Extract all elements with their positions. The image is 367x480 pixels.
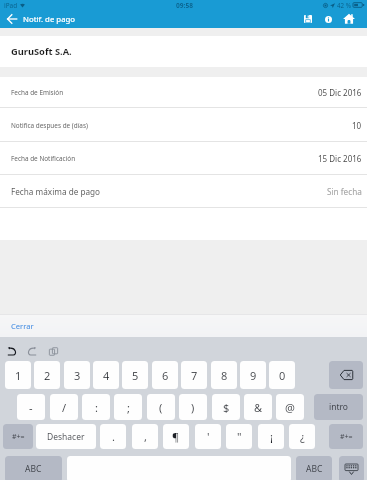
staticText: 3 xyxy=(74,368,81,383)
staticText: 5 xyxy=(132,368,139,383)
button[interactable]: ¿ xyxy=(289,424,315,449)
staticText: 7 xyxy=(191,368,198,383)
button[interactable]: ¡ xyxy=(258,424,284,449)
staticText: GuruSoft S.A. xyxy=(11,45,72,58)
staticText: ¶ xyxy=(172,429,180,444)
staticText: ( xyxy=(159,400,163,415)
button[interactable]: 7 xyxy=(181,361,207,389)
button[interactable]: : xyxy=(82,394,110,420)
staticText: 42 % xyxy=(337,1,351,9)
button[interactable]: & xyxy=(244,394,272,420)
button[interactable]: Back xyxy=(0,10,23,28)
button[interactable]: 0 xyxy=(269,361,295,389)
button[interactable]: Home xyxy=(338,10,359,28)
button[interactable]: Save xyxy=(298,10,318,28)
staticText: iPad xyxy=(4,1,18,10)
button[interactable]: , xyxy=(132,424,158,449)
staticText: 05 Dic 2016 xyxy=(318,87,362,98)
button[interactable]: Cerrar xyxy=(0,314,367,337)
staticText: ¡ xyxy=(270,429,273,444)
button[interactable]: 8 xyxy=(211,361,237,389)
staticText: ) xyxy=(191,400,195,415)
staticText: 4 xyxy=(103,368,110,383)
staticText: : xyxy=(95,400,98,415)
staticText: $ xyxy=(223,400,230,415)
button[interactable]: / xyxy=(50,394,78,420)
staticText: Deshacer xyxy=(47,431,85,443)
staticText: Sin fecha xyxy=(327,186,362,197)
button[interactable]: ABC xyxy=(5,456,62,480)
staticText: 9 xyxy=(250,368,257,383)
staticText: , xyxy=(144,429,147,444)
staticText: " xyxy=(237,429,242,444)
button[interactable]: Fecha máxima de pago xyxy=(0,175,367,208)
button[interactable]: - xyxy=(17,394,45,420)
staticText: & xyxy=(254,400,263,415)
button[interactable]: #+= xyxy=(3,424,33,449)
button[interactable]: " xyxy=(226,424,252,449)
staticText: / xyxy=(62,400,67,415)
staticText: #+= xyxy=(12,432,25,442)
staticText: 0 xyxy=(279,368,286,383)
staticText: Fecha de Emisión xyxy=(11,88,64,97)
button[interactable]: Paste xyxy=(45,343,61,359)
button[interactable]: Fecha de Notificación xyxy=(0,142,367,175)
staticText: intro xyxy=(329,401,348,413)
staticText: 6 xyxy=(162,368,169,383)
button[interactable]: bksp xyxy=(329,361,363,389)
staticText: Fecha máxima de pago xyxy=(11,186,101,197)
staticText: ABC xyxy=(25,463,42,475)
staticText: Fecha de Notificación xyxy=(11,154,76,163)
staticText: @ xyxy=(285,400,295,415)
button[interactable]: ' xyxy=(195,424,221,449)
staticText: 09:58 xyxy=(176,1,193,10)
staticText: 1 xyxy=(15,368,22,383)
button[interactable]: Fecha de Emisión xyxy=(0,77,367,108)
button[interactable]: ABC xyxy=(296,456,332,480)
button[interactable]: ) xyxy=(179,394,207,420)
button[interactable]: hide xyxy=(339,456,364,480)
button[interactable]: ¶ xyxy=(163,424,189,449)
staticText: 10 xyxy=(352,120,362,131)
staticText: ¿ xyxy=(300,429,305,444)
button[interactable]: intro xyxy=(314,394,363,420)
button[interactable]: 2 xyxy=(34,361,60,389)
staticText: . xyxy=(112,429,115,444)
staticText: #+= xyxy=(340,432,353,442)
button[interactable]: 3 xyxy=(64,361,90,389)
button[interactable]: 4 xyxy=(93,361,119,389)
button[interactable]: ; xyxy=(114,394,142,420)
button[interactable]: 6 xyxy=(152,361,178,389)
staticText: ABC xyxy=(306,463,323,475)
staticText: Notif. de pago xyxy=(23,14,76,25)
staticText: 8 xyxy=(221,368,228,383)
button[interactable]: . xyxy=(100,424,126,449)
staticText: Cerrar xyxy=(11,321,34,331)
button[interactable]: Info xyxy=(318,10,338,28)
staticText: Notifica despues de (días) xyxy=(11,121,88,130)
button[interactable]: $ xyxy=(212,394,240,420)
button[interactable]: 9 xyxy=(240,361,266,389)
button[interactable]: ( xyxy=(147,394,175,420)
staticText: ' xyxy=(207,429,210,444)
button[interactable]: #+= xyxy=(329,424,363,449)
staticText: 2 xyxy=(44,368,51,383)
button[interactable]: Deshacer xyxy=(36,424,96,449)
button[interactable]: 1 xyxy=(5,361,31,389)
button[interactable]: Undo xyxy=(4,343,20,359)
staticText: - xyxy=(29,400,33,415)
staticText: 15 Dic 2016 xyxy=(318,153,362,164)
button[interactable]: Redo xyxy=(24,343,40,359)
button[interactable]: 5 xyxy=(122,361,148,389)
staticText: ; xyxy=(127,400,130,415)
button[interactable]: Notifica despues de (días) xyxy=(0,108,367,142)
button[interactable]: @ xyxy=(276,394,304,420)
